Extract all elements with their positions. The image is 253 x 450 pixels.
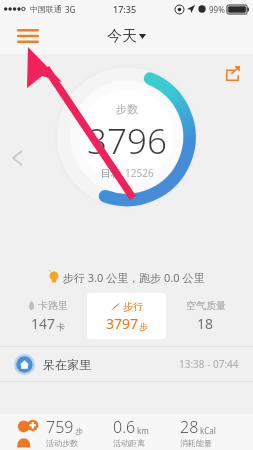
button[interactable]: 步行 [87,293,166,339]
staticText: 13:38 - 07:44 [179,357,239,371]
staticText: 步 [75,426,83,436]
staticText: 147 [31,314,56,333]
staticText: 步行 3.0 公里，跑步 0.0 公里 [63,270,205,285]
button[interactable]: 卡路里 [8,292,87,340]
button[interactable]: 呆在家里 [14,347,239,381]
button[interactable]: 0.6 [113,416,180,448]
button[interactable]: Previous day [4,145,30,171]
staticText: 目标 [101,167,121,180]
staticText: 759 [46,416,74,438]
button[interactable]: 空气质量 [166,292,245,340]
staticText: 18 [197,314,214,333]
button[interactable]: 28 [180,416,247,448]
staticText: 步行 [123,300,143,313]
staticText: 17:35 [113,3,137,15]
button[interactable]: Menu [12,20,44,52]
staticText: 28 [180,416,199,438]
staticText: 消耗能量 [180,438,212,448]
staticText: 3796 [87,117,167,165]
staticText: 12526 [125,166,154,180]
staticText: 0.6 [113,416,136,438]
staticText: 今天 [107,27,137,46]
staticText: 空气质量 [186,299,226,312]
staticText: 3797 [106,314,139,333]
staticText: 99% [209,4,225,15]
staticText: 中国联通 [30,4,62,14]
button[interactable]: Share [219,60,245,86]
staticText: 3G [65,4,76,15]
staticText: km [137,425,149,436]
staticText: 卡 [56,321,65,332]
staticText: 步 [139,321,148,332]
staticText: 活动步数 [46,438,78,448]
staticText: 活动距离 [113,438,145,448]
staticText: kCal [200,425,216,436]
other: Activity [12,418,40,446]
button[interactable]: 今天 [107,27,146,46]
staticText: 步数 [116,102,138,116]
staticText: 呆在家里 [43,357,91,372]
staticText: 卡路里 [38,299,68,312]
button[interactable]: 759 [46,416,113,448]
